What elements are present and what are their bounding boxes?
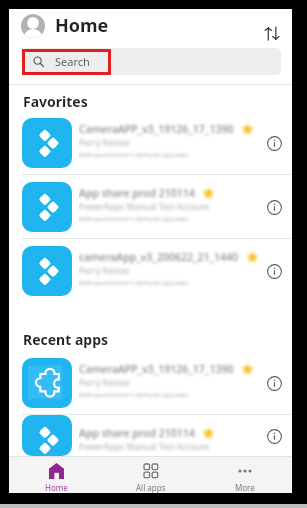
staticText: More: [235, 482, 255, 493]
staticText: Recent apps: [23, 330, 109, 349]
staticText: Favorites: [23, 92, 88, 111]
button[interactable]: Sort: [260, 21, 284, 45]
staticText: Home: [55, 13, 109, 38]
button[interactable]: More: [198, 457, 292, 493]
staticText: MSProjectShared11 (default) Upgrades: [79, 215, 189, 223]
staticText: PowerApps Manual Test Account: [79, 441, 210, 453]
staticText: App share prod 210114: [79, 186, 195, 200]
button[interactable]: App details: [262, 371, 286, 395]
staticText: PowerApps Manual Test Account: [79, 201, 210, 213]
staticText: Perry Keister: [79, 137, 131, 149]
staticText: Perry Keister: [79, 377, 131, 389]
staticText: CameraAPP_v3_19126_17_1390: [79, 362, 234, 376]
staticText: All apps: [136, 482, 166, 493]
button[interactable]: Search: [22, 48, 281, 75]
button[interactable]: All apps: [104, 457, 198, 493]
button[interactable]: App details: [262, 131, 286, 155]
staticText: cameraApp_v3_200622_21_1440: [79, 250, 239, 264]
staticText: CameraAPP_v3_19126_17_1390: [79, 122, 234, 136]
staticText: MSProjectShared11 (default) Upgrades: [79, 151, 189, 159]
staticText: Perry Keister: [79, 265, 131, 277]
button[interactable]: App share prod 210114: [9, 415, 292, 456]
staticText: Home: [45, 482, 68, 493]
button[interactable]: Home: [9, 457, 104, 493]
button[interactable]: App share prod 210114: [9, 175, 292, 238]
button[interactable]: App details: [262, 195, 286, 219]
staticText: MSProjectShared11 (default) Upgrades: [79, 391, 189, 399]
button[interactable]: cameraApp_v3_200622_21_1440: [9, 239, 292, 302]
staticText: Search: [55, 54, 90, 69]
staticText: MSProjectShared11 (default) Upgrades: [79, 279, 189, 287]
button[interactable]: CameraAPP_v3_19126_17_1390: [9, 111, 292, 174]
button[interactable]: App details: [262, 424, 286, 448]
button[interactable]: CameraAPP_v3_19126_17_1390: [9, 351, 292, 414]
button[interactable]: App details: [262, 259, 286, 283]
staticText: App share prod 210114: [79, 426, 195, 440]
